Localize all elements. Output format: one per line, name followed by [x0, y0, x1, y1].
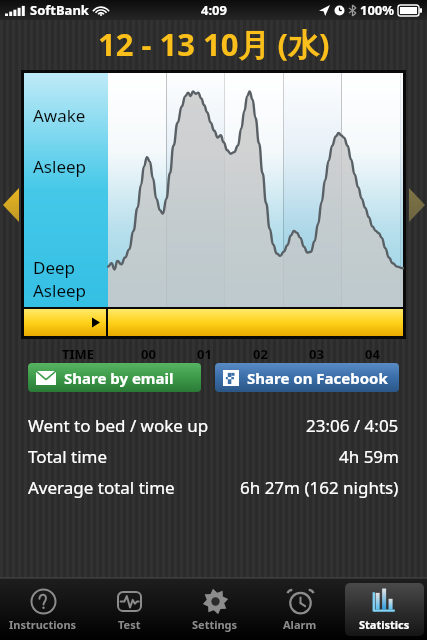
staticText: 03: [309, 345, 324, 363]
staticText: Deep: [33, 256, 76, 279]
staticText: Average total time: [28, 476, 175, 499]
button[interactable]: Settings: [172, 581, 257, 638]
staticText: 6h 27m (162 nights): [240, 476, 399, 499]
button[interactable]: Test: [86, 581, 172, 638]
staticText: Asleep: [33, 155, 87, 178]
staticText: Settings: [192, 617, 238, 632]
button[interactable]: Alarm: [257, 581, 342, 638]
staticText: Awake: [33, 104, 86, 127]
staticText: 4:09: [201, 1, 227, 19]
button[interactable]: Statistics: [342, 581, 427, 638]
button[interactable]: Next night: [406, 68, 427, 341]
button[interactable]: Share by email: [28, 363, 201, 392]
staticText: TIME: [62, 345, 95, 363]
staticText: Alarm: [283, 617, 317, 632]
staticText: Share on Facebook: [247, 368, 388, 388]
button[interactable]: Share on Facebook: [215, 363, 399, 392]
staticText: 01: [197, 345, 212, 363]
staticText: 04: [365, 345, 380, 363]
staticText: Test: [118, 617, 141, 632]
staticText: Statistics: [359, 617, 410, 632]
staticText: Asleep: [33, 279, 87, 302]
staticText: Went to bed / woke up: [28, 414, 209, 437]
staticText: 12 - 13 10月 (水): [98, 23, 330, 65]
staticText: 4h 59m: [339, 445, 399, 468]
staticText: 100%: [360, 1, 395, 19]
staticText: 23:06 / 4:05: [306, 414, 399, 437]
staticText: SoftBank: [30, 1, 89, 19]
button[interactable]: Instructions: [0, 581, 86, 638]
staticText: Share by email: [64, 368, 174, 388]
staticText: Instructions: [9, 617, 77, 632]
staticText: Total time: [28, 445, 108, 468]
button[interactable]: Previous night: [0, 68, 21, 341]
staticText: 02: [253, 345, 268, 363]
staticText: 00: [141, 345, 156, 363]
